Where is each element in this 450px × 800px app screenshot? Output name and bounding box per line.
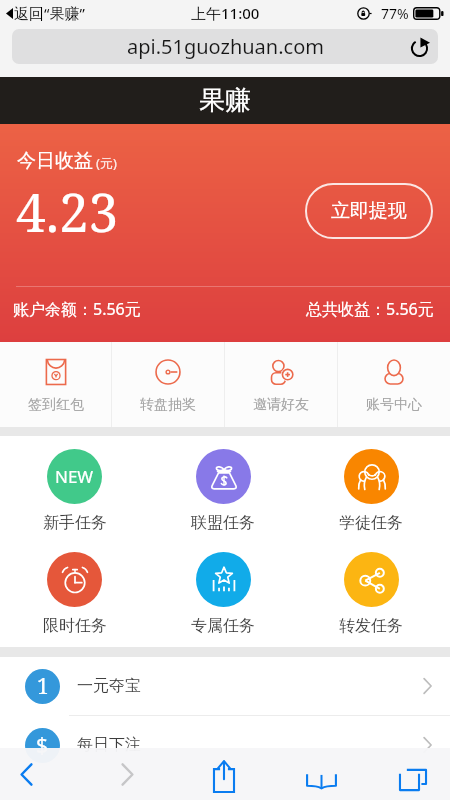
- button[interactable]: api.51guozhuan.com: [12, 29, 438, 64]
- staticText: 签到红包: [28, 396, 84, 414]
- button[interactable]: Share: [200, 748, 248, 800]
- button[interactable]: 返回“果赚”: [6, 3, 85, 23]
- staticText: 限时任务: [43, 616, 107, 636]
- button[interactable]: Bookmarks: [297, 748, 345, 800]
- button[interactable]: Forward: [103, 748, 151, 800]
- staticText: 果赚: [199, 84, 251, 117]
- button[interactable]: 学徒任务: [297, 449, 445, 533]
- button[interactable]: 签到红包: [0, 342, 111, 427]
- button[interactable]: $: [0, 716, 450, 774]
- button[interactable]: 账号中心: [338, 342, 450, 427]
- staticText: 77%: [381, 4, 409, 23]
- button[interactable]: 联盟任务: [149, 449, 297, 533]
- staticText: 总共收益：5.56元: [306, 298, 434, 320]
- staticText: 联盟任务: [191, 513, 255, 533]
- staticText: 每日下注: [77, 735, 141, 755]
- staticText: 今日收益: [17, 149, 93, 173]
- staticText: 专属任务: [191, 616, 255, 636]
- staticText: 1: [37, 672, 49, 701]
- staticText: (元): [96, 154, 117, 172]
- staticText: 一元夺宝: [77, 676, 141, 696]
- staticText: 立即提现: [331, 199, 407, 223]
- button[interactable]: Reload: [407, 35, 431, 59]
- staticText: 转盘抽奖: [140, 396, 196, 414]
- button[interactable]: NEW: [0, 449, 149, 533]
- staticText: 4.23: [16, 175, 119, 247]
- button[interactable]: 立即提现: [305, 183, 433, 239]
- button[interactable]: Back: [2, 748, 50, 800]
- button[interactable]: 限时任务: [0, 552, 149, 636]
- staticText: api.51guozhuan.com: [127, 33, 324, 60]
- staticText: 上午11:00: [191, 3, 260, 23]
- staticText: 邀请好友: [253, 396, 309, 414]
- staticText: 新手任务: [43, 513, 107, 533]
- staticText: $: [36, 731, 49, 760]
- button[interactable]: 转盘抽奖: [112, 342, 224, 427]
- button[interactable]: Tabs: [389, 748, 437, 800]
- staticText: 返回“果赚”: [14, 3, 85, 23]
- staticText: NEW: [55, 465, 94, 488]
- button[interactable]: 转发任务: [297, 552, 445, 636]
- button[interactable]: 专属任务: [149, 552, 297, 636]
- button[interactable]: 1: [0, 657, 450, 715]
- staticText: 账户余额：5.56元: [13, 298, 141, 320]
- button[interactable]: 邀请好友: [225, 342, 337, 427]
- staticText: 学徒任务: [339, 513, 403, 533]
- staticText: 账号中心: [366, 396, 422, 414]
- staticText: 转发任务: [339, 616, 403, 636]
